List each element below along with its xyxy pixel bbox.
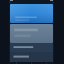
- button[interactable]: [10, 4, 53, 23]
- button[interactable]: [10, 24, 53, 43]
- button[interactable]: Library: [39, 62, 54, 64]
- button[interactable]: [10, 52, 53, 62]
- button[interactable]: Home: [9, 62, 24, 64]
- button[interactable]: [10, 43, 53, 52]
- button[interactable]: Search: [24, 62, 39, 64]
